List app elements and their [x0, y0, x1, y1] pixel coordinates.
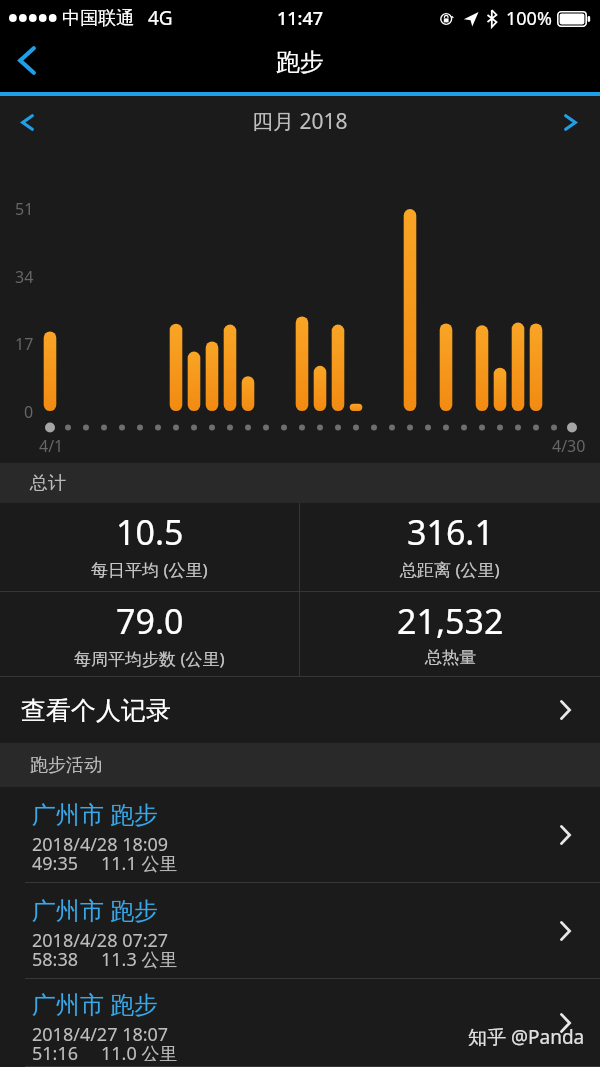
- staticText: 34: [15, 266, 34, 286]
- staticText: 79.0: [116, 598, 184, 644]
- staticText: 11:47: [277, 6, 324, 31]
- staticText: 11.1 公里: [101, 851, 178, 876]
- staticText: 11.0 公里: [101, 1041, 178, 1061]
- button[interactable]: Next month: [548, 96, 600, 152]
- button[interactable]: 查看个人记录: [0, 677, 600, 743]
- button[interactable]: 广州市 跑步: [0, 883, 600, 979]
- staticText: 广州市 跑步: [32, 893, 159, 926]
- staticText: 316.1: [407, 509, 494, 555]
- staticText: 4/30: [552, 435, 586, 457]
- staticText: 100%: [506, 6, 552, 31]
- staticText: 查看个人记录: [21, 695, 171, 726]
- staticText: 51:16: [32, 1041, 79, 1061]
- staticText: 跑步: [276, 47, 324, 77]
- staticText: 知乎 @Panda: [468, 1024, 585, 1050]
- button[interactable]: 10.5: [0, 503, 299, 581]
- staticText: 总距离 (公里): [400, 558, 500, 581]
- button[interactable]: 21,532: [300, 592, 600, 668]
- staticText: 跑步活动: [30, 754, 102, 777]
- staticText: 58:38: [32, 947, 79, 972]
- staticText: 4G: [148, 5, 173, 31]
- button[interactable]: 广州市 跑步: [0, 787, 600, 883]
- staticText: 21,532: [397, 598, 504, 644]
- staticText: 总热量: [425, 647, 476, 668]
- staticText: 广州市 跑步: [32, 797, 159, 830]
- staticText: 4/1: [39, 435, 64, 457]
- button[interactable]: Back: [0, 36, 56, 96]
- button[interactable]: 316.1: [300, 503, 600, 581]
- staticText: 17: [15, 333, 34, 353]
- staticText: 每日平均 (公里): [91, 558, 208, 581]
- staticText: 49:35: [32, 851, 79, 876]
- staticText: 2018/4/28 07:27: [32, 928, 169, 953]
- staticText: 总计: [30, 472, 66, 495]
- staticText: 2018/4/27 18:07: [32, 1022, 169, 1047]
- staticText: 广州市 跑步: [32, 987, 159, 1020]
- staticText: 每周平均步数 (公里): [74, 647, 225, 670]
- staticText: 0: [24, 401, 34, 421]
- staticText: 中国联通: [62, 7, 134, 30]
- button[interactable]: 广州市 跑步: [0, 979, 600, 1067]
- staticText: 51: [15, 198, 34, 218]
- staticText: 10.5: [116, 509, 184, 555]
- button[interactable]: Previous month: [0, 96, 52, 152]
- staticText: 11.3 公里: [101, 947, 178, 972]
- staticText: 四月 2018: [252, 107, 348, 136]
- button[interactable]: 79.0: [0, 592, 299, 670]
- staticText: 2018/4/28 18:09: [32, 832, 169, 857]
